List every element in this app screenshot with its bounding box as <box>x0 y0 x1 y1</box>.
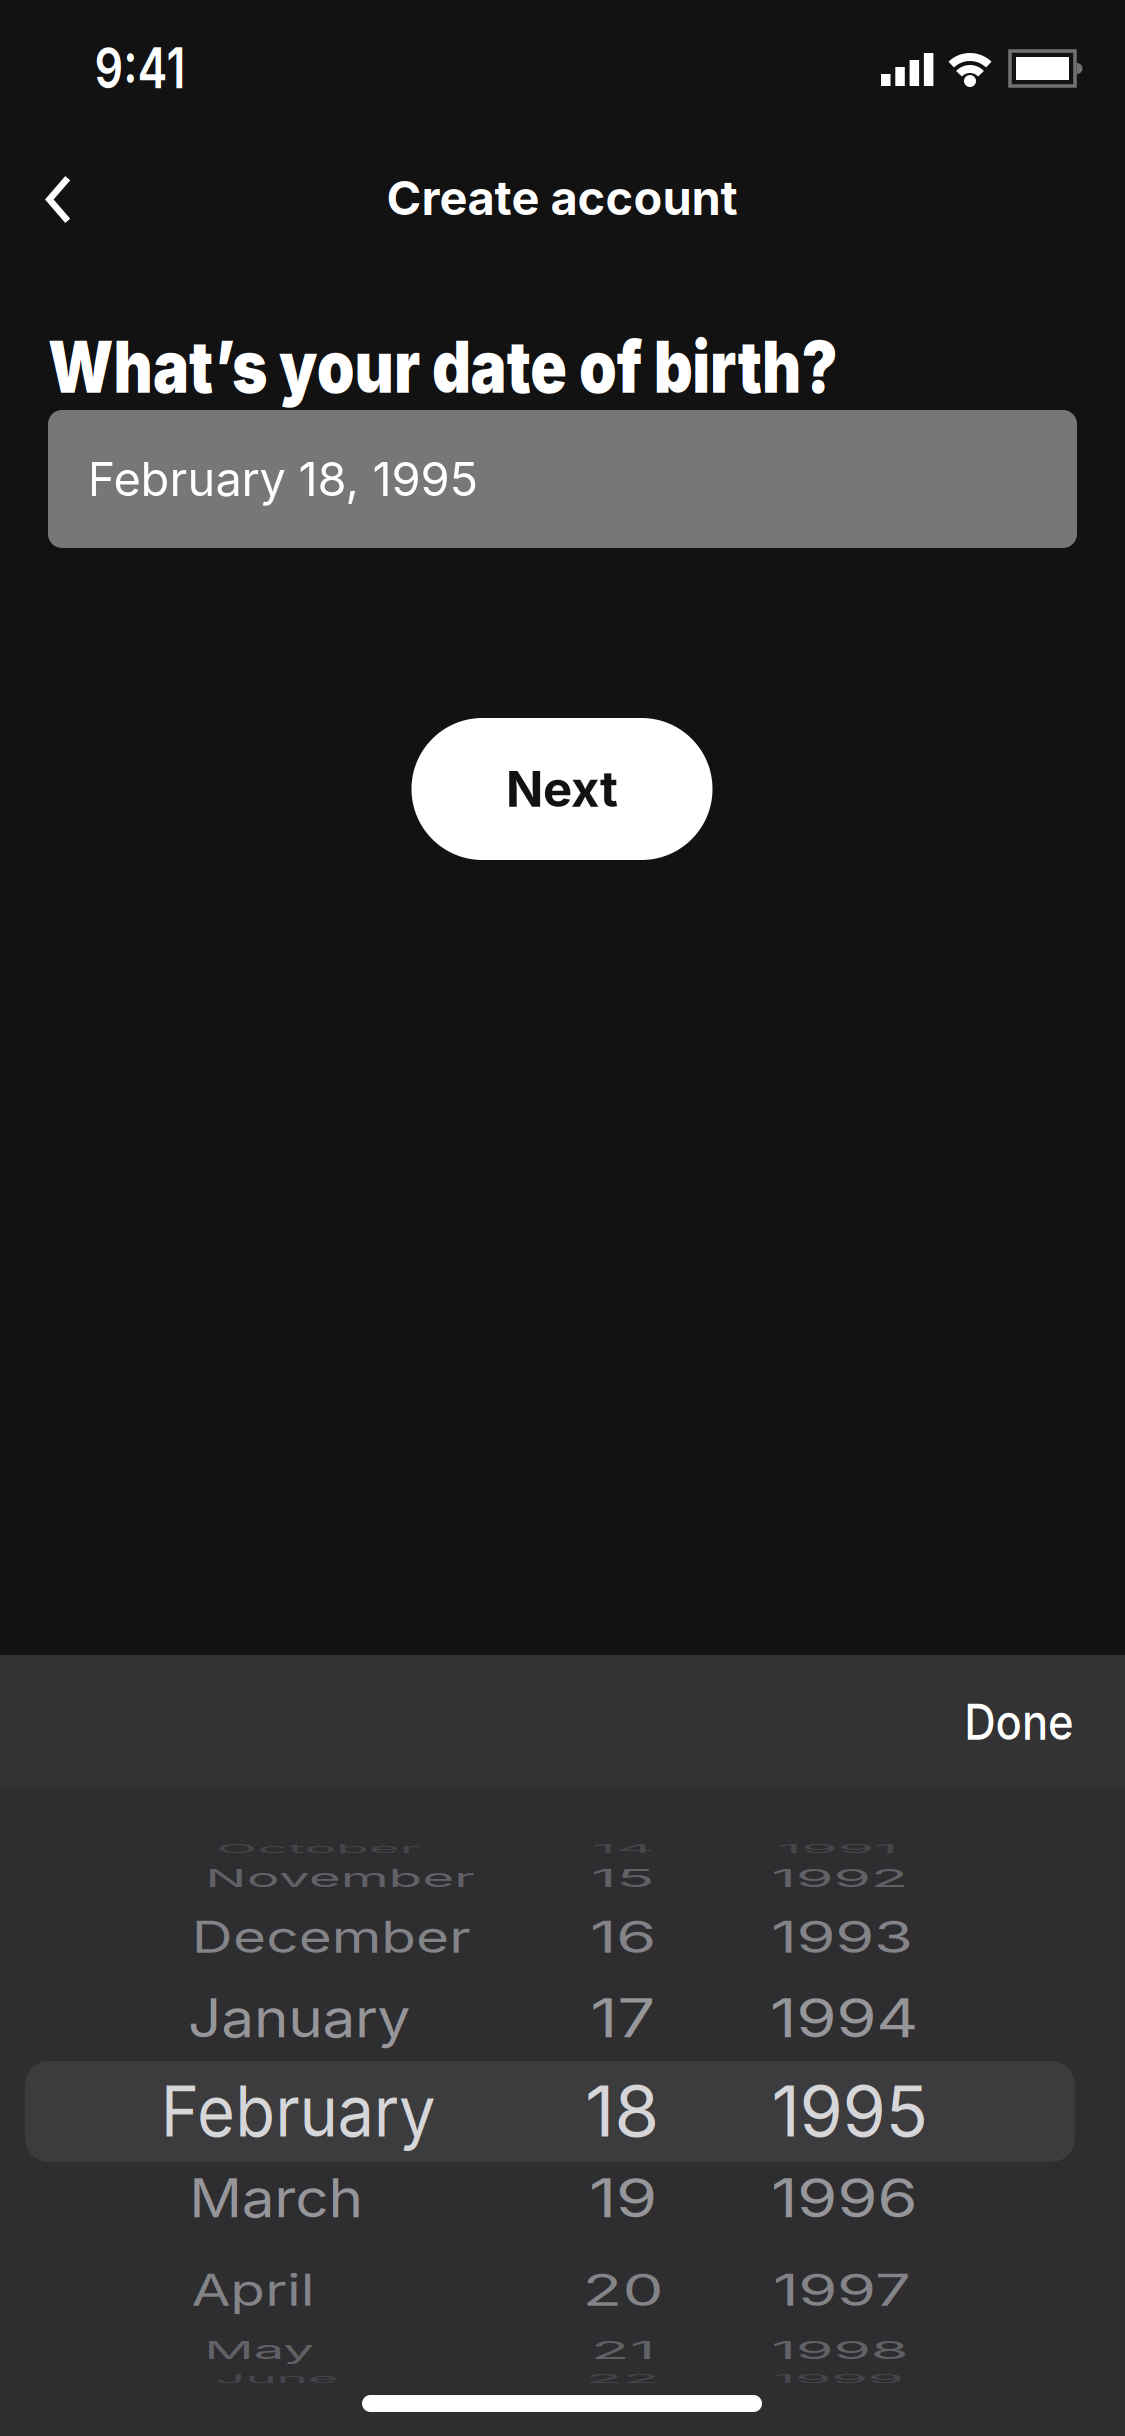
staticText: 1992 <box>761 1836 918 1920</box>
staticText: Done <box>957 1692 1080 1752</box>
button[interactable]: February 18, 1995 <box>48 410 1077 548</box>
staticText: March <box>172 2156 380 2240</box>
staticText: February 18, 1995 <box>87 451 478 507</box>
staticText: 19 <box>587 2156 658 2240</box>
staticText: April <box>177 2248 329 2332</box>
staticText: 17 <box>589 1976 657 2060</box>
staticText: 1997 <box>765 2248 918 2332</box>
staticText: February <box>150 2069 445 2153</box>
staticText: 1996 <box>766 2156 923 2240</box>
staticText: 1998 <box>761 2308 918 2392</box>
button[interactable]: Next <box>411 718 712 860</box>
staticText: 21 <box>587 2308 658 2392</box>
staticText: 20 <box>579 2248 666 2332</box>
staticText: 14 <box>586 1807 659 1891</box>
staticText: January <box>166 1976 432 2060</box>
staticText: 9:41 <box>83 34 197 102</box>
staticText: 15 <box>587 1836 658 1920</box>
staticText: 1993 <box>763 1895 920 1979</box>
staticText: 1999 <box>759 2337 916 2421</box>
staticText: Next <box>506 759 618 819</box>
staticText: 1994 <box>765 1976 924 2060</box>
staticText: 1995 <box>771 2069 928 2153</box>
staticText: 16 <box>587 1895 658 1979</box>
staticText: 1991 <box>767 1807 909 1891</box>
staticText: October <box>184 1807 452 1891</box>
staticText: Create account <box>386 170 737 226</box>
staticText: 18 <box>586 2069 657 2153</box>
staticText: What’s your date of birth? <box>48 323 988 410</box>
staticText: June <box>195 2337 358 2421</box>
button[interactable]: Back <box>4 144 114 254</box>
staticText: November <box>168 1836 512 1920</box>
button[interactable]: Done <box>957 1692 1080 1752</box>
staticText: 22 <box>580 2337 666 2421</box>
staticText: December <box>159 1895 503 1979</box>
staticText: May <box>189 2308 329 2392</box>
